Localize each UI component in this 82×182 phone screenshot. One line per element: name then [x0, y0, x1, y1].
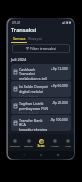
staticText: Semua [13, 36, 26, 41]
staticText: Isi Saldo Dompet [19, 84, 48, 89]
staticText: 17 Jul · Selesai [19, 95, 39, 97]
staticText: Transaksi [11, 26, 37, 33]
button[interactable]: Riwayat [22, 134, 35, 151]
button[interactable]: Scan QR [37, 139, 45, 148]
button[interactable]: Isi Saldo Dompet [11, 81, 71, 97]
staticText: +Rp 50.000 [51, 84, 68, 88]
staticText: Riwayat [28, 36, 42, 41]
button[interactable]: Beranda [8, 134, 22, 151]
staticText: Transfer Bank BCA [19, 118, 49, 127]
staticText: melakukan e-toll [19, 76, 48, 80]
button[interactable]: Promo [48, 134, 61, 151]
staticText: Juli 2024 [11, 57, 27, 62]
staticText: pembayaran PLN [19, 106, 49, 111]
button[interactable]: Riwayat [27, 36, 43, 41]
staticText: Scan [37, 144, 45, 148]
staticText: 15 Jul · Selesai [19, 112, 39, 114]
staticText: 09.41 [12, 20, 21, 25]
staticText: +Rp 12.000 [51, 67, 68, 71]
staticText: Tagihan Listrik [19, 101, 44, 106]
staticText: Cashback Transaksi [19, 67, 50, 76]
staticText: kepada rekening [19, 127, 48, 131]
staticText: Akun [65, 144, 71, 147]
staticText: Beranda [10, 144, 20, 147]
button[interactable]: Tagihan Listrik [11, 98, 71, 114]
button[interactable]: Cashback Transaksi [11, 64, 71, 80]
staticText: -Rp 100.000 [50, 118, 68, 122]
button[interactable]: Transfer Bank BCA [11, 115, 71, 131]
button[interactable]: Akun [61, 134, 74, 151]
staticText: Promo [51, 144, 59, 147]
button[interactable]: Filter transaksi [12, 44, 70, 53]
staticText: Filter transaksi [30, 46, 57, 51]
staticText: -Rp 25.000 [52, 101, 68, 105]
staticText: digital melalui [19, 89, 43, 94]
button[interactable]: Semua [11, 36, 27, 43]
staticText: Riwayat [24, 144, 33, 147]
